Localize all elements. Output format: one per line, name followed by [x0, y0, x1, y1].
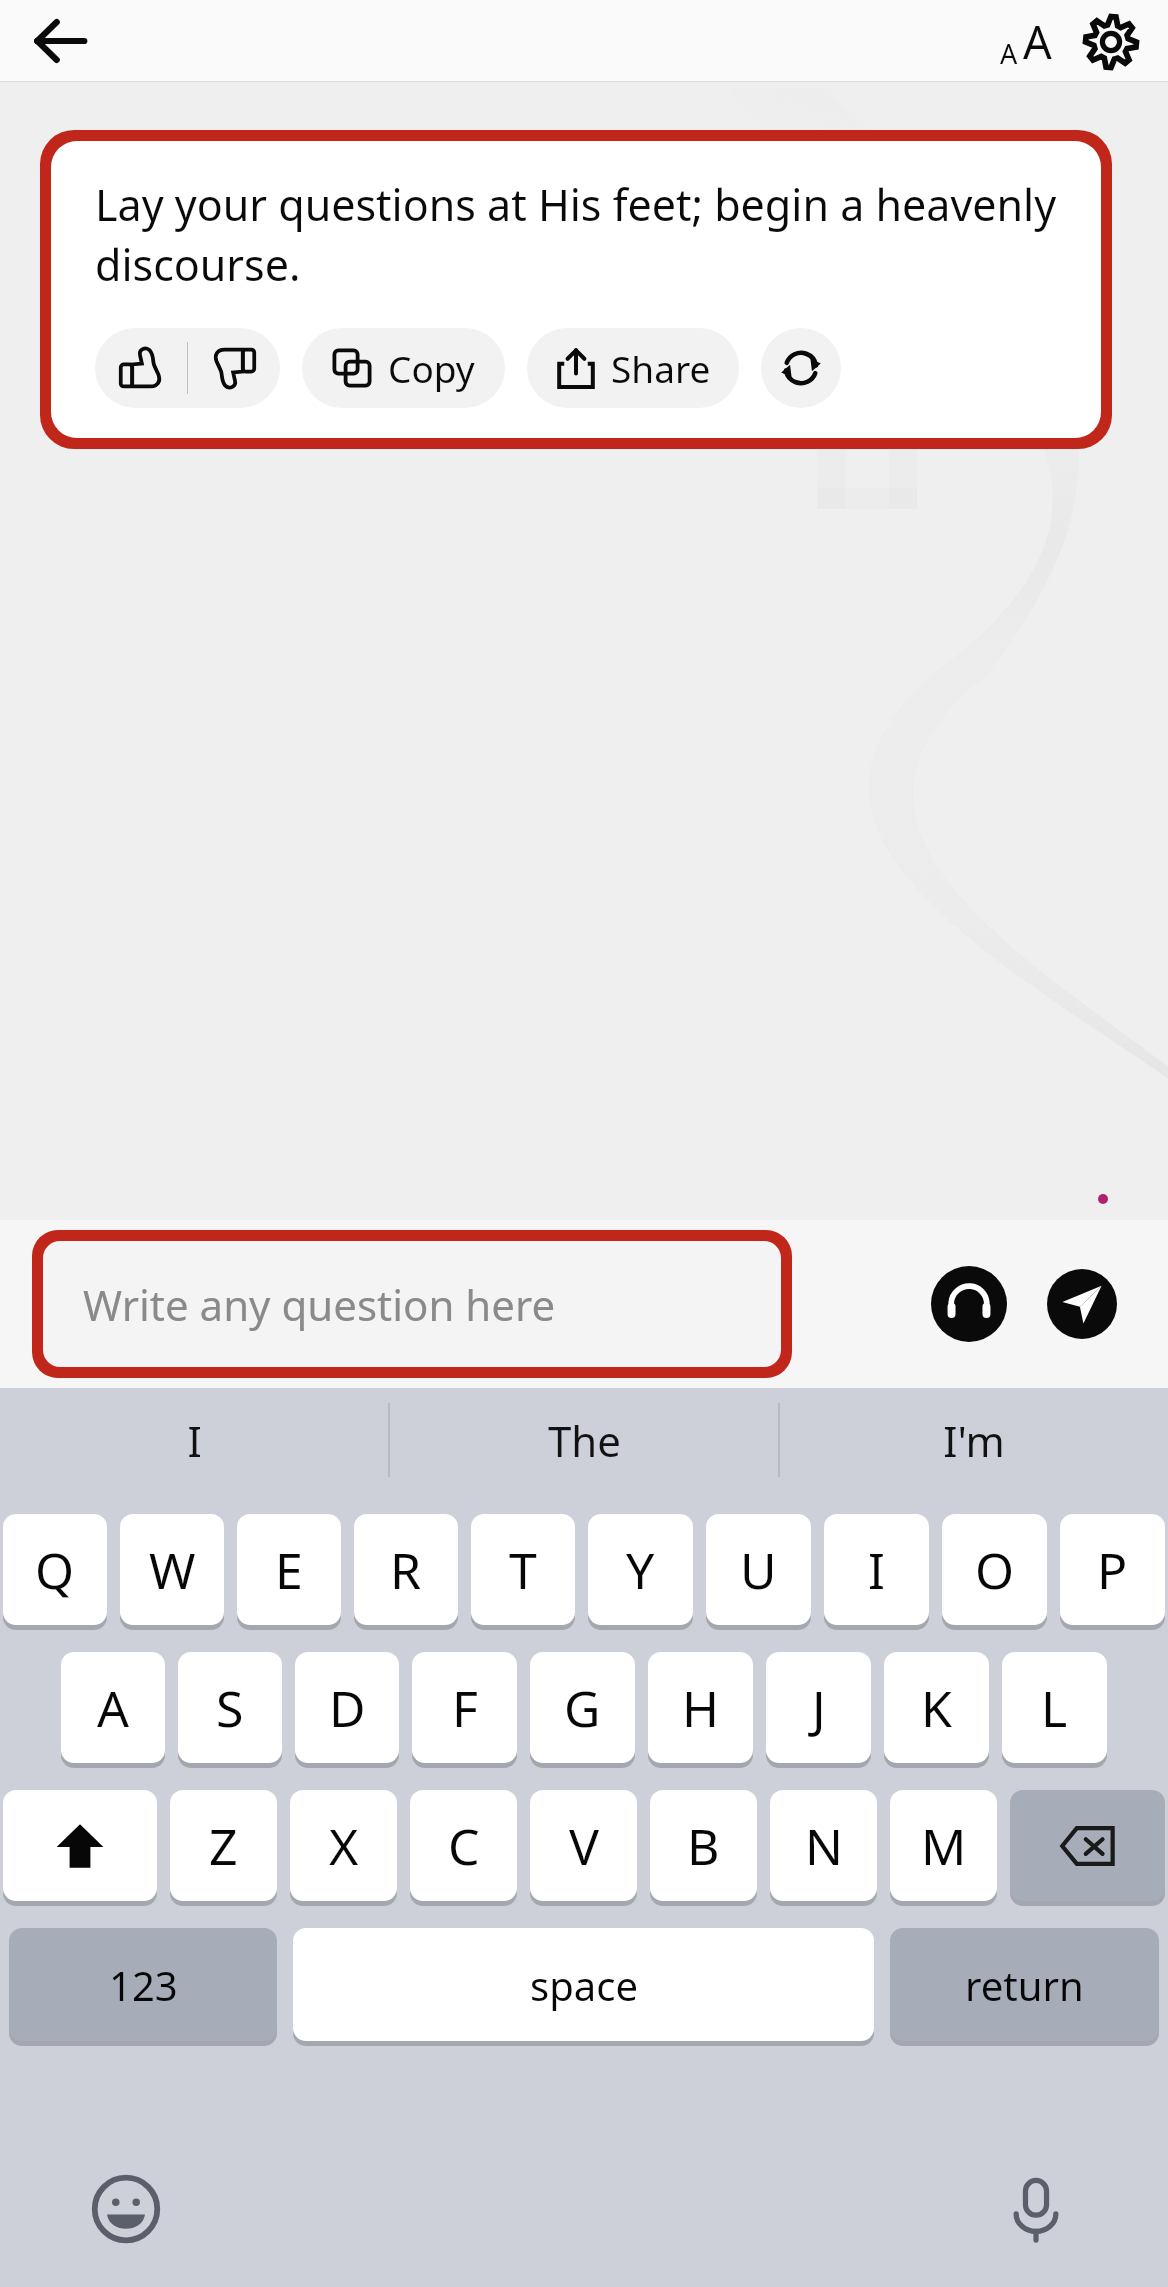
button[interactable]: P — [1060, 1514, 1165, 1625]
staticText: V — [569, 1812, 599, 1880]
staticText: B — [687, 1812, 720, 1880]
staticText: Write any question here — [83, 1276, 556, 1333]
staticText: The — [548, 1412, 621, 1469]
staticText: Copy — [388, 343, 475, 393]
staticText: I — [868, 1536, 885, 1604]
staticText: H — [682, 1674, 720, 1742]
button[interactable]: G — [530, 1652, 635, 1763]
button[interactable]: I — [824, 1514, 929, 1625]
button[interactable]: E — [237, 1514, 341, 1625]
staticText: A — [1000, 35, 1018, 72]
button[interactable]: Share — [527, 328, 739, 408]
button[interactable]: return — [890, 1928, 1159, 2041]
staticText: return — [965, 1958, 1084, 2012]
button[interactable]: Dictate — [992, 2165, 1080, 2253]
staticText: 123 — [109, 1958, 178, 2012]
staticText: L — [1041, 1674, 1068, 1742]
button[interactable]: Settings — [1078, 9, 1144, 75]
button[interactable]: A — [61, 1652, 165, 1763]
staticText: M — [921, 1812, 967, 1880]
staticText: A — [1023, 11, 1052, 72]
button[interactable]: O — [942, 1514, 1047, 1625]
button[interactable]: K — [884, 1652, 989, 1763]
button[interactable]: Regenerate — [761, 328, 841, 408]
button[interactable]: B — [650, 1790, 757, 1901]
button[interactable]: space — [293, 1928, 874, 2041]
button[interactable]: M — [890, 1790, 997, 1901]
staticText: X — [329, 1812, 359, 1880]
button[interactable]: A — [992, 5, 1060, 78]
button[interactable]: Listen — [926, 1261, 1012, 1347]
button[interactable]: H — [648, 1652, 753, 1763]
staticText: C — [448, 1812, 480, 1880]
button[interactable]: Copy — [302, 328, 505, 408]
button[interactable]: D — [295, 1652, 399, 1763]
button[interactable]: Shift — [3, 1790, 157, 1901]
staticText: A — [97, 1674, 129, 1742]
button[interactable]: N — [770, 1790, 877, 1901]
staticText: R — [390, 1536, 422, 1604]
button[interactable]: R — [354, 1514, 458, 1625]
button[interactable]: Lay your questions at His feet; begin a … — [51, 141, 1101, 438]
button[interactable]: Dislike — [188, 328, 280, 408]
staticText: O — [975, 1536, 1015, 1604]
button[interactable]: S — [178, 1652, 282, 1763]
button[interactable]: Emoji — [82, 2165, 170, 2253]
button[interactable]: Backspace — [1010, 1790, 1165, 1901]
staticText: Z — [209, 1812, 238, 1880]
button[interactable]: I'm — [780, 1388, 1168, 1492]
staticText: Lay your questions at His feet; begin a … — [95, 175, 1071, 294]
staticText: D — [329, 1674, 366, 1742]
staticText: Share — [611, 343, 711, 393]
button[interactable]: T — [471, 1514, 575, 1625]
staticText: space — [530, 1958, 638, 2012]
staticText: P — [1097, 1536, 1128, 1604]
button[interactable]: U — [706, 1514, 811, 1625]
button[interactable]: Q — [3, 1514, 107, 1625]
staticText: I — [187, 1412, 202, 1469]
staticText: K — [921, 1674, 952, 1742]
staticText: G — [564, 1674, 601, 1742]
button[interactable]: Y — [588, 1514, 693, 1625]
staticText: E — [275, 1536, 303, 1604]
staticText: N — [805, 1812, 843, 1880]
button[interactable]: Write any question here — [43, 1241, 781, 1367]
button[interactable]: C — [410, 1790, 517, 1901]
staticText: J — [812, 1674, 826, 1742]
staticText: W — [149, 1536, 196, 1604]
button[interactable]: V — [530, 1790, 637, 1901]
staticText: T — [509, 1536, 537, 1604]
button[interactable]: X — [290, 1790, 397, 1901]
button[interactable]: J — [766, 1652, 871, 1763]
button[interactable]: L — [1002, 1652, 1107, 1763]
staticText: Q — [35, 1536, 75, 1604]
staticText: Y — [626, 1536, 655, 1604]
button[interactable]: Send — [1042, 1264, 1122, 1344]
button[interactable]: 123 — [9, 1928, 277, 2041]
button[interactable]: F — [412, 1652, 517, 1763]
button[interactable]: Back — [22, 3, 98, 79]
staticText: S — [216, 1674, 244, 1742]
button[interactable]: Like — [95, 328, 187, 408]
button[interactable]: Z — [170, 1790, 277, 1901]
staticText: F — [452, 1674, 478, 1742]
staticText: U — [740, 1536, 777, 1604]
button[interactable]: I — [0, 1388, 388, 1492]
button[interactable]: W — [120, 1514, 224, 1625]
staticText: I'm — [943, 1412, 1005, 1469]
button[interactable]: The — [390, 1388, 778, 1492]
